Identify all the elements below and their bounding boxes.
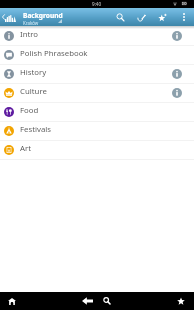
staticText: History bbox=[20, 67, 172, 78]
staticText: Intro bbox=[20, 29, 172, 40]
button[interactable]: Intro bbox=[0, 27, 194, 46]
button[interactable]: History bbox=[0, 65, 194, 84]
button[interactable]: Festivals bbox=[0, 122, 194, 141]
button[interactable]: Favorites bbox=[170, 292, 192, 310]
button[interactable]: Navigate up bbox=[0, 8, 18, 26]
staticText: Food bbox=[20, 105, 182, 116]
staticText: Polish Phrasebook bbox=[20, 48, 182, 59]
staticText: Festivals bbox=[20, 124, 182, 135]
button[interactable]: Search bbox=[110, 8, 131, 26]
button[interactable]: Edit bbox=[131, 8, 152, 26]
button[interactable]: Food bbox=[0, 103, 194, 122]
button[interactable]: Art bbox=[0, 141, 194, 160]
button[interactable]: More options bbox=[173, 8, 194, 26]
staticText: Art bbox=[20, 143, 182, 154]
staticText: Culture bbox=[20, 86, 172, 97]
staticText: 9:40 bbox=[92, 1, 102, 7]
button[interactable]: Culture bbox=[0, 84, 194, 103]
button[interactable]: Add to favorites bbox=[152, 8, 173, 26]
button[interactable]: Polish Phrasebook bbox=[0, 46, 194, 65]
button[interactable]: Home bbox=[1, 292, 23, 310]
staticText: Kraków bbox=[23, 20, 39, 26]
button[interactable]: Search bbox=[96, 292, 118, 310]
staticText: Background bbox=[23, 11, 63, 20]
button[interactable]: Back bbox=[76, 292, 98, 310]
